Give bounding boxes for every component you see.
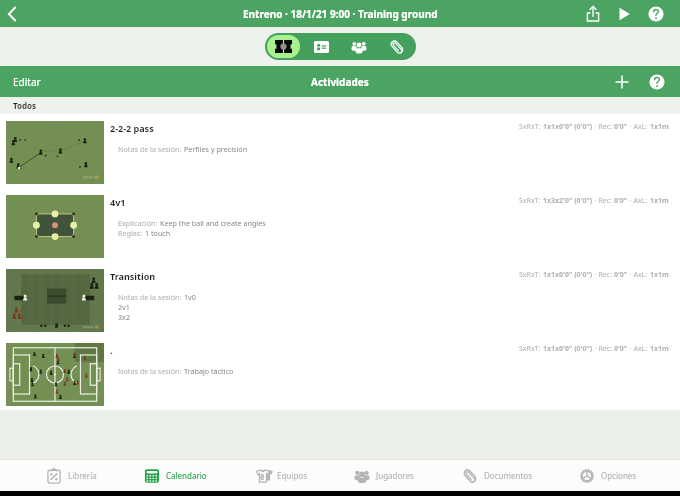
staticText: Opciones [601,470,637,481]
staticText: Librería [68,470,97,481]
button[interactable]: Equipos [255,460,307,491]
staticText: 1x1m [650,122,669,132]
staticText: 0'0" [614,196,628,206]
staticText: Editar [13,75,41,89]
staticText: Notas de la sesión: [118,366,184,376]
staticText: . [110,344,113,356]
button[interactable]: Attachments [378,33,416,60]
staticText: Documentos [484,470,532,481]
staticText: Equipos [277,470,307,481]
button[interactable]: Editar [13,75,41,89]
button[interactable]: Transition [0,262,680,336]
staticText: Reglas: [118,228,145,238]
staticText: · AxL: [628,122,650,132]
staticText: · AxL: [628,196,650,206]
staticText: 1x1m [650,344,669,354]
staticText: 1 touch [145,228,171,238]
staticText: · Rec: [593,122,614,132]
staticText: 0'0" [614,344,628,354]
staticText: · Rec: [593,196,614,206]
staticText: Actividades [311,75,369,89]
staticText: · Rec: [593,344,614,354]
staticText: · AxL: [628,344,650,354]
staticText: 1x1x0'0" (0'0") [543,122,593,132]
staticText: 1v0 [184,292,196,302]
staticText: Keep the ball and create angles [160,218,266,228]
staticText: · AxL: [628,270,650,280]
staticText: 3x2 [118,312,131,322]
staticText: Perfiles y precisión [184,144,248,154]
staticText: 0'0" [614,122,628,132]
button[interactable]: Opciones [579,460,637,491]
staticText: Todos [13,100,37,111]
button[interactable]: Documentos [462,460,532,491]
button[interactable]: Add [610,70,634,94]
staticText: Transition [110,270,156,282]
button[interactable]: Card [302,33,340,60]
button[interactable]: Calendario [144,460,207,491]
staticText: 1x1m [650,270,669,280]
staticText: Explicación: [118,218,160,228]
staticText: Notas de la sesión: [118,144,184,154]
button[interactable]: 4v1 [0,188,680,262]
staticText: SxRxT: [519,270,543,280]
button[interactable]: . [0,336,680,410]
button[interactable]: Drills [267,35,300,58]
button[interactable]: 2-2-2 pass [0,114,680,188]
staticText: 1x1m [650,196,669,206]
button[interactable]: Jugadores [354,460,414,491]
staticText: 2-2-2 pass [110,122,154,134]
staticText: Trabajo táctico [184,366,234,376]
staticText: 4v1 [110,196,126,208]
staticText: Jugadores [376,470,414,481]
button[interactable]: Players [340,33,378,60]
staticText: 1x1x0'0" (0'0") [543,344,593,354]
staticText: 1x1x0'0" (0'0") [543,270,593,280]
button[interactable]: Help [644,2,668,26]
staticText: Notas de la sesión: [118,292,184,302]
staticText: SxRxT: [519,344,543,354]
button[interactable]: Back [0,2,24,26]
staticText: · Rec: [593,270,614,280]
staticText: SxRxT: [519,122,543,132]
button[interactable]: Share [581,2,605,26]
staticText: 0'0" [614,270,628,280]
button[interactable]: Librería [46,460,97,491]
staticText: Calendario [166,470,207,481]
button[interactable]: Play [612,2,636,26]
staticText: 1x3x2'0" (6'0") [543,196,593,206]
button[interactable]: Help [645,70,669,94]
staticText: 2v1 [118,302,130,312]
staticText: SxRxT: [519,196,543,206]
staticText: Entreno · 18/1/21 9:00 · Training ground [243,7,438,21]
